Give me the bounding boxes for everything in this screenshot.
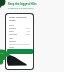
staticText: Keep the biggest Hilts <box>8 2 37 6</box>
staticText: Sneakers in a best price <box>8 7 34 10</box>
button[interactable]: Checkout <box>7 49 33 54</box>
button[interactable]: Order Checkout Detail <box>6 14 33 69</box>
staticText: Order Checkout Detail <box>9 16 30 22</box>
